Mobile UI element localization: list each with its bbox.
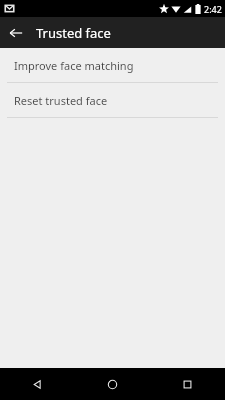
button[interactable]: Navigate up [0,17,31,48]
button[interactable]: Home [75,368,150,400]
staticText: Reset trusted face [14,93,108,108]
staticText: Trusted face [36,24,111,42]
button[interactable]: Improve face matching [0,48,225,82]
staticText: 2:42 [204,3,222,15]
button[interactable]: Back [0,368,75,400]
staticText: Improve face matching [14,58,134,73]
button[interactable]: Recent apps [150,368,225,400]
button[interactable]: Reset trusted face [0,83,225,117]
